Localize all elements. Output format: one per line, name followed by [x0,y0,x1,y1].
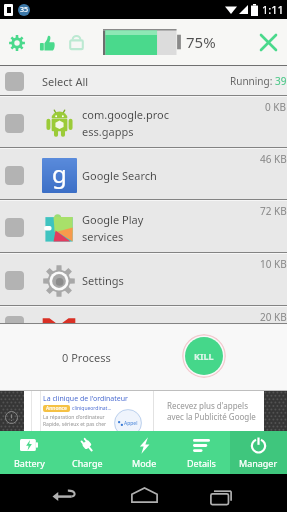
button[interactable]: g [0,149,287,201]
staticText: 0 Process [62,350,111,365]
staticText: Google Search [82,168,157,183]
button[interactable]: La clinique de l'ordinateur [24,391,264,431]
staticText: 39 [275,74,287,88]
button[interactable]: Back [48,478,80,510]
staticText: 10 KB [260,257,287,271]
button[interactable]: Settings [0,254,287,307]
staticText: 46 KB [260,152,287,166]
staticText: Running: [230,74,275,88]
staticText: Charge [72,457,103,469]
staticText: La clinique de l'ordinateur [43,394,128,404]
staticText: 75% [186,32,216,52]
staticText: services [82,229,124,244]
button[interactable]: Charge [58,431,116,474]
button[interactable]: Settings [3,29,30,56]
staticText: Appel [124,420,138,427]
staticText: 35 [20,5,29,15]
staticText: Annonce [46,405,67,412]
button[interactable]: Battery [0,431,58,474]
staticText: ess.gapps [82,124,134,139]
staticText: cliniqueordinat... [72,405,112,412]
staticText: 20 KB [260,310,287,324]
staticText: Rapide, sérieux et pas cher [43,421,107,428]
staticText: Mode [132,457,157,469]
button[interactable]: Manager [230,431,287,474]
button[interactable]: Home [128,479,160,511]
button[interactable]: Mode [116,431,173,474]
button[interactable]: Recents [205,481,237,512]
staticText: La réparation d'ordinateur [43,414,105,421]
staticText: 1:11 [262,2,284,17]
staticText: Manager [239,457,278,469]
staticText: Details [187,457,216,469]
staticText: Settings [82,273,124,288]
staticText: Battery [14,457,45,469]
button[interactable]: Details [173,431,230,474]
staticText: Google Play [82,212,144,227]
staticText: Select All [42,74,89,89]
button[interactable]: com.google.proc [0,97,287,149]
staticText: avec la Publicité Google [167,411,256,422]
staticText: 72 KB [260,204,287,218]
staticText: 0 KB [265,100,287,114]
button[interactable]: Google Play [0,201,287,254]
button[interactable]: Select All [0,65,287,97]
button[interactable]: Boost [33,29,60,56]
button[interactable]: KILL [182,334,226,378]
button[interactable]: Lock [63,29,90,56]
button[interactable]: Close [254,28,282,56]
staticText: Recevez plus d'appels [167,400,248,411]
staticText: g [52,158,67,190]
button[interactable] [0,316,287,325]
staticText: KILL [194,350,214,362]
staticText: com.google.proc [82,107,170,122]
